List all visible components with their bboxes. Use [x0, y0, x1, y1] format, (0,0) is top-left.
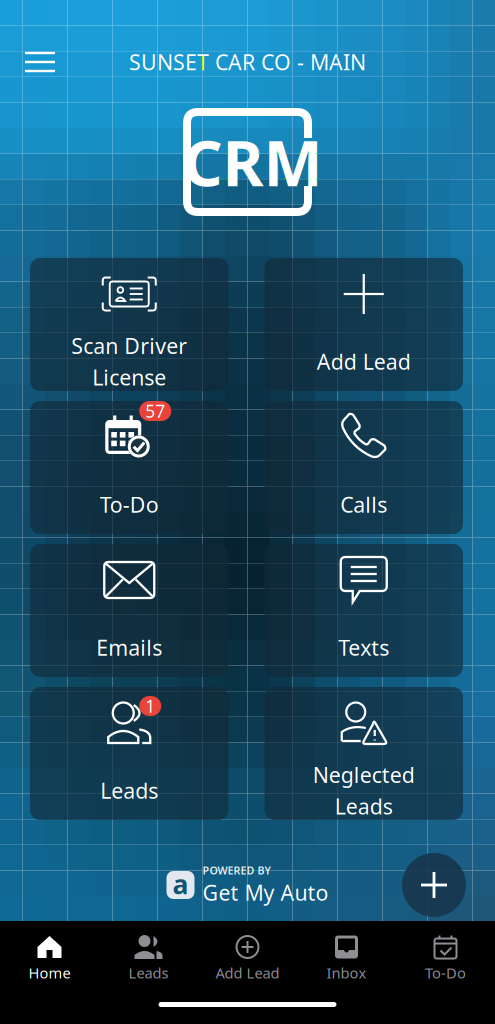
button[interactable]: Home — [0, 927, 99, 988]
staticText: POWERED BY — [202, 863, 270, 877]
button[interactable]: Menu — [0, 36, 71, 88]
button[interactable]: Neglected — [264, 687, 463, 820]
staticText: Scan Driver — [71, 332, 187, 360]
staticText: CRM — [182, 120, 322, 204]
button[interactable]: To-Do — [396, 927, 495, 988]
staticText: Emails — [96, 633, 162, 662]
staticText: Leads — [335, 792, 393, 820]
staticText: 57 — [145, 399, 165, 422]
button[interactable]: Calls — [264, 401, 463, 534]
staticText: a — [172, 866, 188, 902]
staticText: To-Do — [425, 963, 466, 982]
button[interactable]: Add Lead — [198, 927, 297, 988]
button[interactable]: Leads — [99, 927, 198, 988]
staticText: Add Lead — [317, 347, 411, 376]
staticText: SUNSET CAR CO - MAIN — [129, 48, 366, 76]
button[interactable]: 1 — [30, 687, 228, 820]
button[interactable]: Add Lead — [264, 258, 463, 391]
button[interactable]: Texts — [264, 544, 463, 677]
staticText: Neglected — [313, 761, 415, 789]
button[interactable]: Inbox — [297, 927, 396, 988]
button[interactable]: Scan Driver — [30, 258, 228, 391]
staticText: 1 — [145, 694, 155, 717]
button[interactable]: Emails — [30, 544, 228, 677]
staticText: Home — [28, 963, 70, 982]
staticText: Texts — [338, 633, 389, 662]
staticText: Get My Auto — [202, 878, 328, 907]
button[interactable]: 57 — [30, 401, 228, 534]
staticText: Leads — [100, 776, 158, 805]
button[interactable]: Add — [402, 853, 466, 917]
staticText: Inbox — [326, 963, 366, 982]
staticText: Add Lead — [215, 963, 279, 982]
staticText: To-Do — [100, 490, 159, 519]
staticText: Leads — [128, 963, 168, 982]
staticText: Calls — [340, 490, 387, 519]
staticText: License — [92, 363, 166, 391]
